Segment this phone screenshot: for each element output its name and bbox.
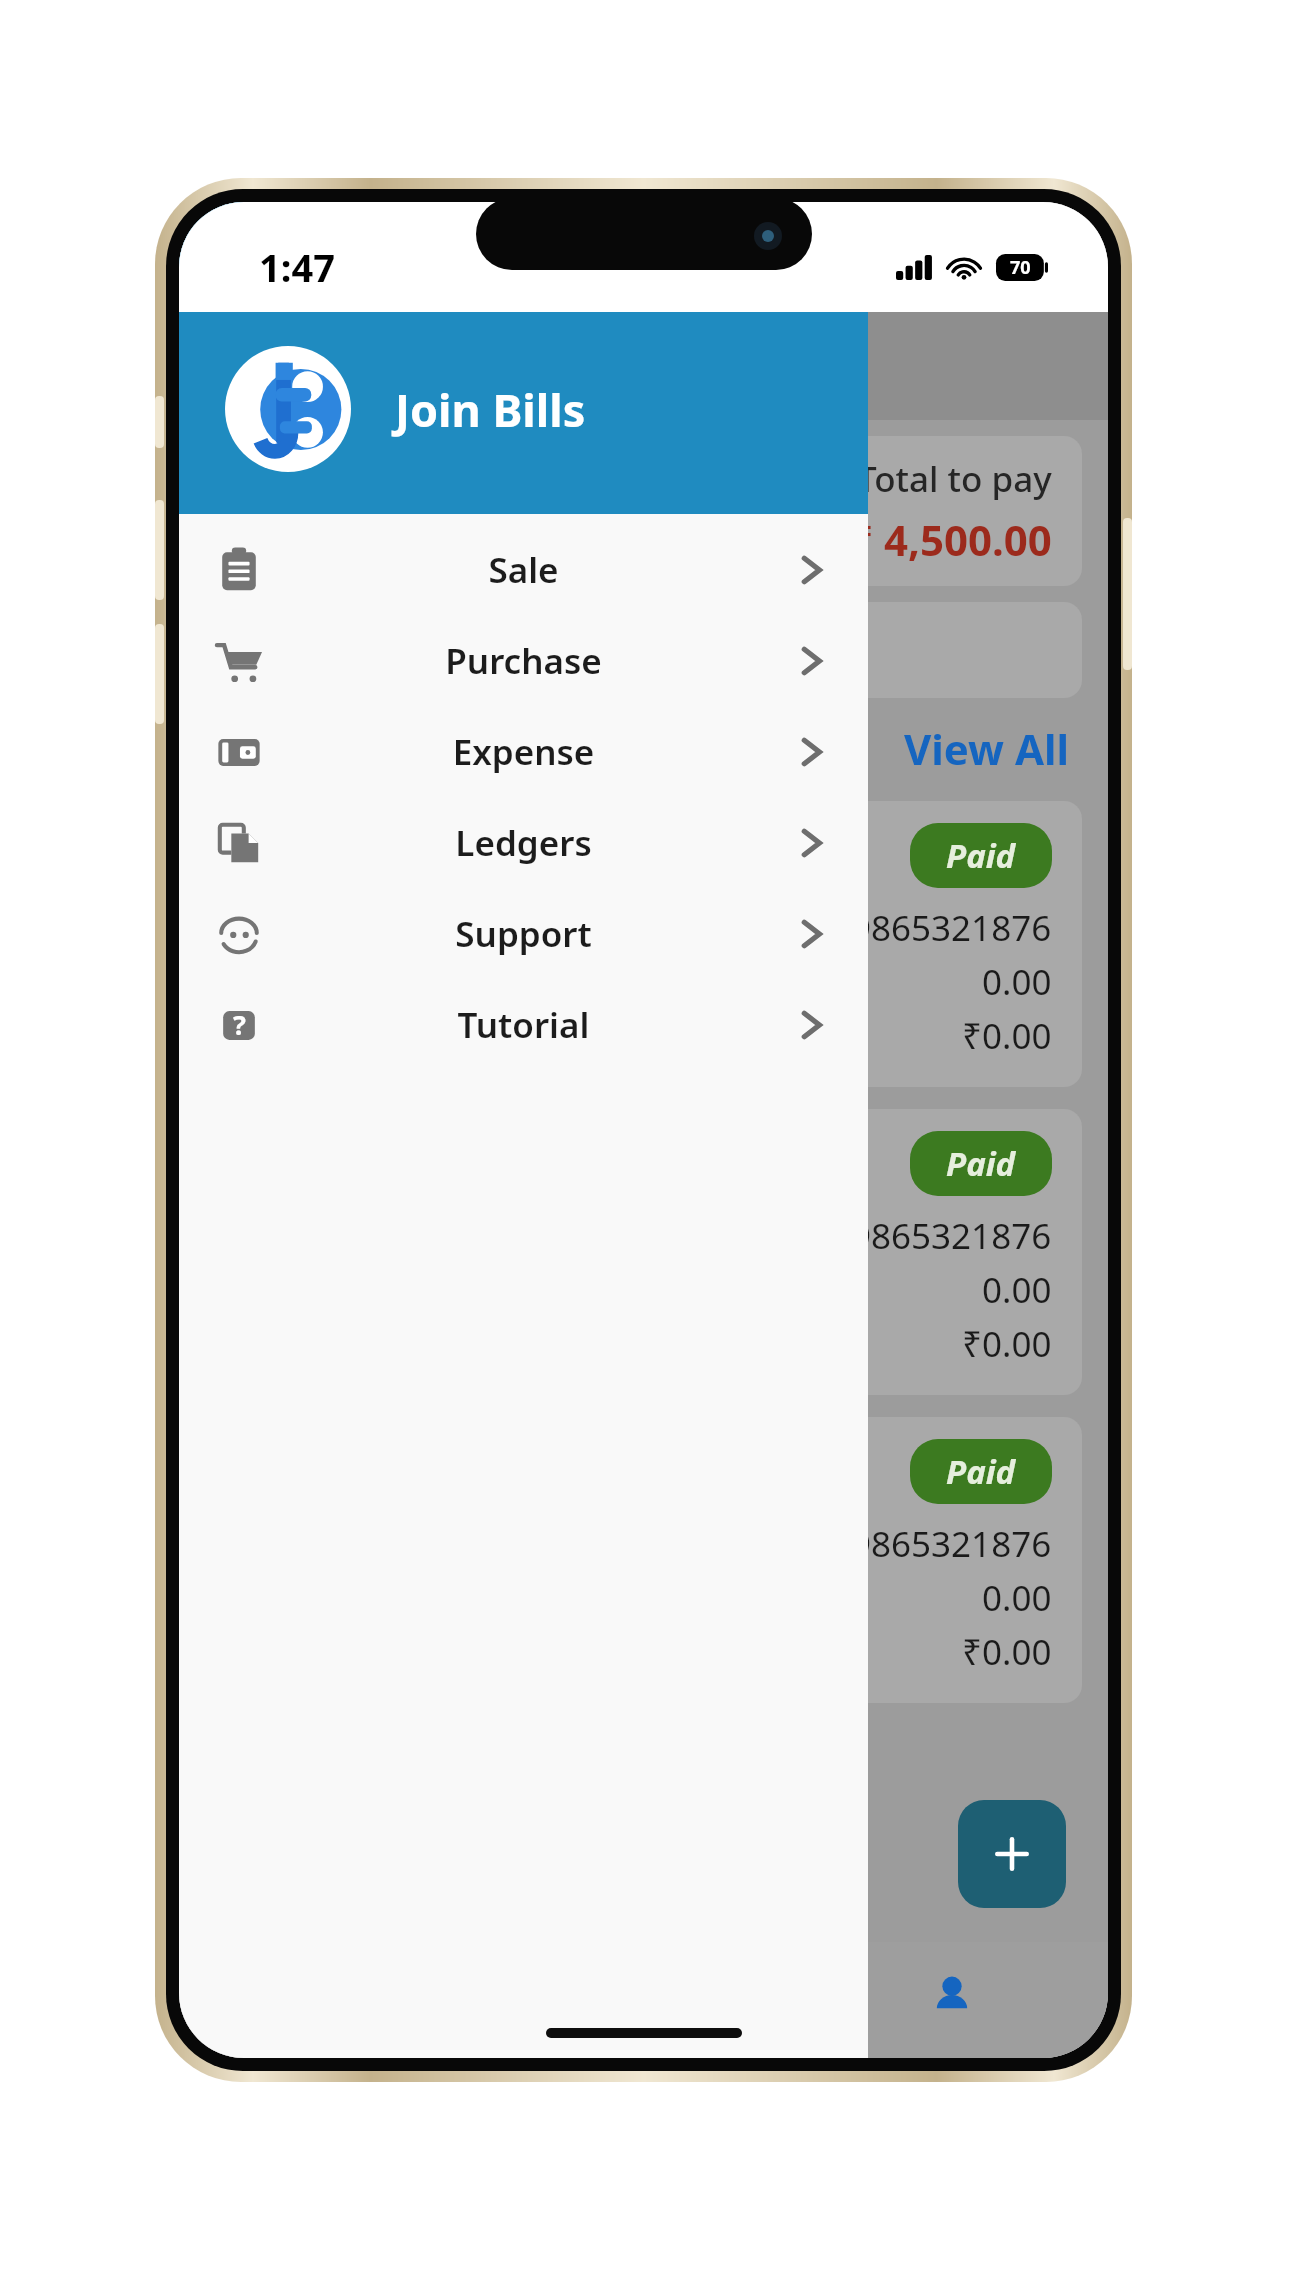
staticText: Purchase (303, 637, 744, 685)
button[interactable]: View All (904, 720, 1070, 777)
button[interactable]: Sale (179, 524, 868, 615)
staticText: ₹ 4,500.00 (849, 511, 1052, 568)
staticText: 9865321876 (851, 1520, 1052, 1568)
button[interactable]: Add (958, 1800, 1066, 1908)
button[interactable]: Total to pay (205, 436, 1082, 586)
button[interactable]: Purchase (179, 615, 868, 706)
staticText: ₹0.00 (962, 1628, 1052, 1676)
staticText: Paid (946, 1449, 1016, 1494)
staticText: 9865321876 (851, 1212, 1052, 1260)
staticText: Support (303, 910, 744, 958)
button[interactable]: ? (179, 979, 868, 1070)
staticText: ₹0.00 (962, 1320, 1052, 1368)
button[interactable]: Paid (205, 801, 1082, 1087)
staticText: Expense (303, 728, 744, 776)
staticText: 1:47 (259, 241, 335, 293)
button[interactable]: Support (179, 888, 868, 979)
staticText: 0.00 (982, 1574, 1052, 1622)
button[interactable]: Tab 4 (902, 1954, 1002, 2036)
staticText: Total to pay (857, 455, 1052, 503)
staticText: 0.00 (982, 1266, 1052, 1314)
staticText: ? (233, 1006, 246, 1043)
staticText: ₹0.00 (962, 1012, 1052, 1060)
button[interactable]: Tab 2 (491, 1954, 591, 2036)
button[interactable]: Ledgers (179, 797, 868, 888)
staticText: Sale (303, 546, 744, 594)
staticText: Ledgers (303, 819, 744, 867)
button[interactable]: Paid (205, 1109, 1082, 1395)
staticText: Tutorial (303, 1001, 744, 1049)
staticText: Paid (946, 833, 1016, 878)
button[interactable]: Ledger Statement (205, 602, 1082, 698)
button[interactable]: Expense (179, 706, 868, 797)
button[interactable]: Paid (205, 1417, 1082, 1703)
staticText: Paid (946, 1141, 1016, 1186)
staticText: Join Bills (395, 379, 586, 440)
staticText: 0.00 (982, 958, 1052, 1006)
staticText: Ledger Statement (477, 625, 810, 675)
staticText: 9865321876 (851, 904, 1052, 952)
staticText: 70 (1010, 255, 1031, 280)
button[interactable]: Tab 3 (696, 1954, 796, 2036)
